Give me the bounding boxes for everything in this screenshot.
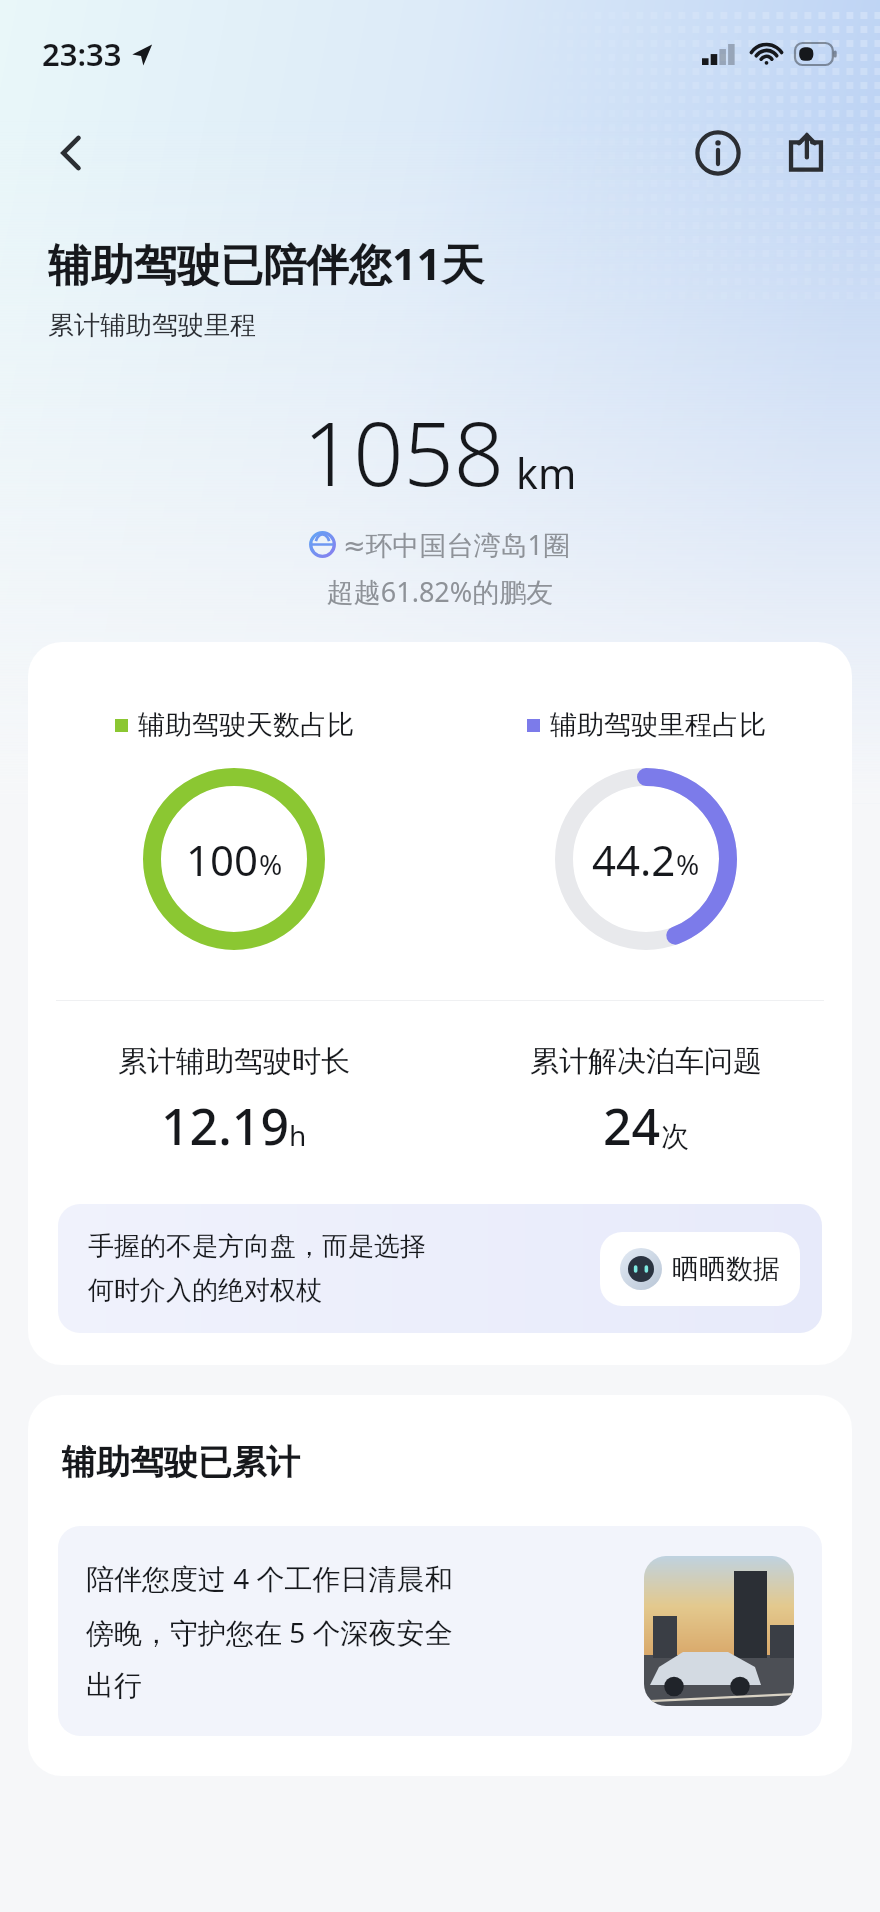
staticText: 次 <box>661 1119 689 1154</box>
staticText: 12.19 <box>161 1092 289 1160</box>
staticText: h <box>289 1116 307 1154</box>
button[interactable]: Share <box>774 121 838 185</box>
staticText: 辅助驾驶已累计 <box>62 1441 300 1484</box>
staticText: 1058 <box>303 392 504 512</box>
staticText: 超越61.82%的鹏友 <box>0 573 880 610</box>
button[interactable]: Info <box>686 121 750 185</box>
staticText: 累计解决泊车问题 <box>530 1043 762 1080</box>
staticText: ≈环中国台湾岛1圈 <box>343 526 571 563</box>
staticText: 累计辅助驾驶时长 <box>118 1043 350 1080</box>
staticText: 100 <box>186 831 259 888</box>
staticText: 手握的不是方向盘，而是选择 何时介入的绝对权杖 <box>88 1230 588 1307</box>
staticText: % <box>259 845 283 883</box>
staticText: 陪伴您度过 4 个工作日清晨和 傍晚，守护您在 5 个深夜安全 出行 <box>86 1559 628 1703</box>
button[interactable]: 晒晒数据 <box>600 1232 800 1306</box>
staticText: 辅助驾驶已陪伴您11天 <box>48 234 485 293</box>
staticText: 晒晒数据 <box>672 1252 780 1286</box>
staticText: 辅助驾驶天数占比 <box>138 708 354 742</box>
staticText: 44.2 <box>592 831 676 888</box>
staticText: % <box>676 845 700 883</box>
staticText: 23:33 <box>42 33 122 75</box>
staticText: km <box>516 445 577 501</box>
staticText: 辅助驾驶里程占比 <box>550 708 766 742</box>
button[interactable]: Back <box>42 123 102 183</box>
staticText: 24 <box>603 1092 661 1160</box>
staticText: 累计辅助驾驶里程 <box>48 309 256 342</box>
